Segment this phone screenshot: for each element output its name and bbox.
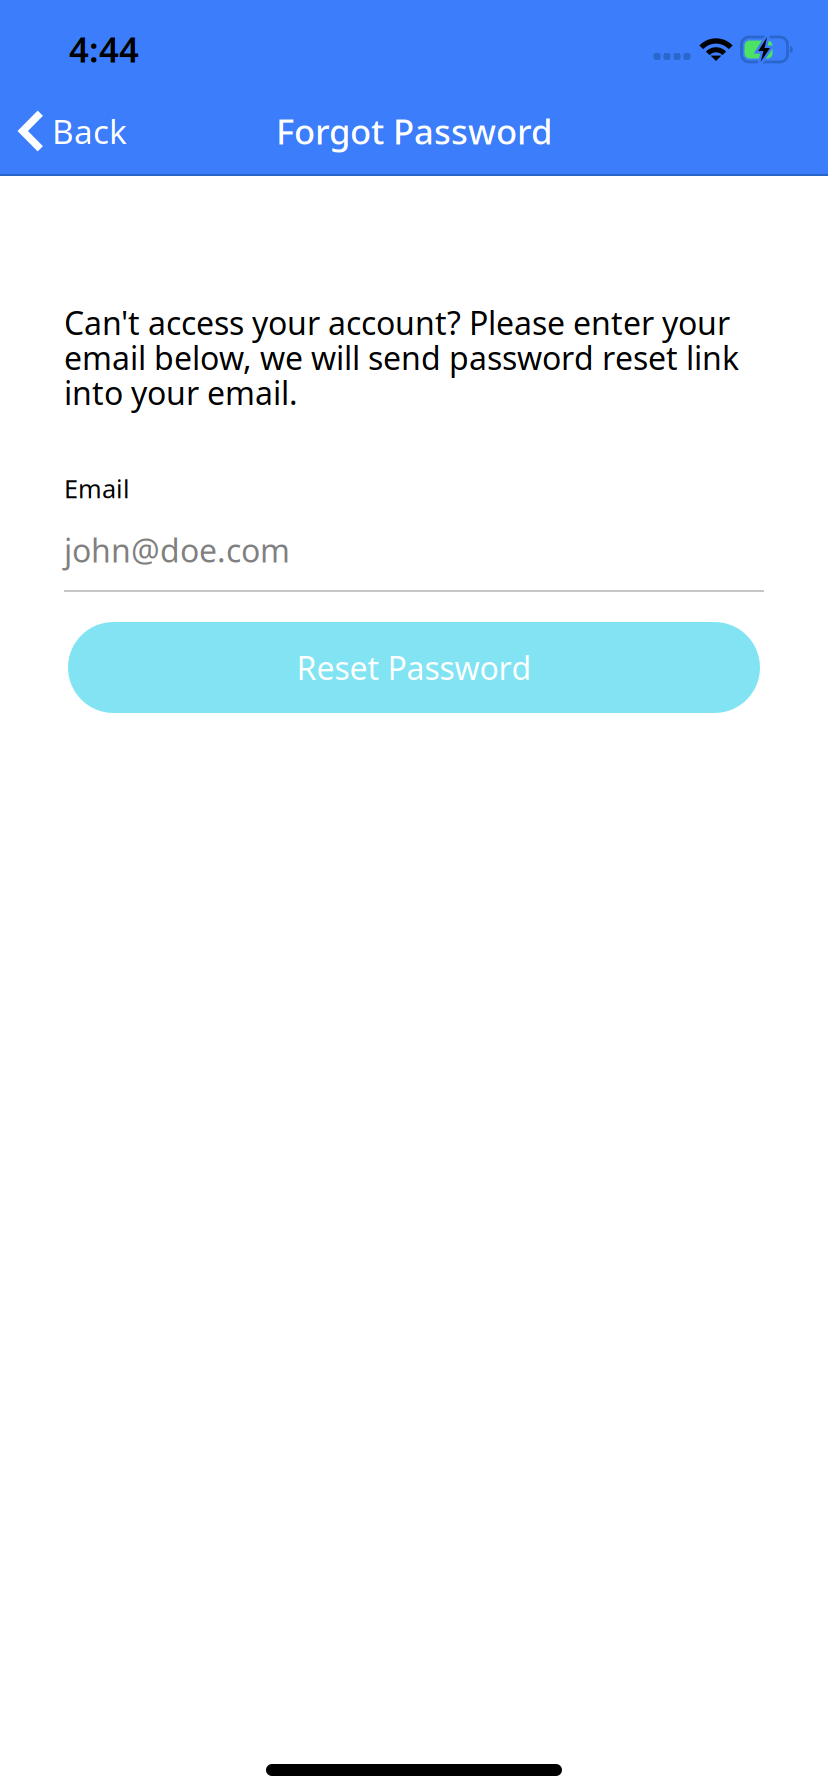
staticText: into your email. — [64, 371, 298, 414]
staticText: Reset Password — [296, 646, 531, 689]
staticText: Can't access your account? Please enter … — [64, 301, 730, 344]
staticText: email below, we will send password reset… — [64, 336, 739, 379]
staticText: john@doe.com — [64, 529, 290, 571]
button[interactable]: Back — [0, 88, 149, 174]
button[interactable]: Email address field — [64, 533, 764, 592]
button[interactable]: Reset Password — [68, 622, 760, 713]
staticText: Back — [52, 109, 127, 153]
staticText: Email — [64, 472, 130, 505]
staticText: Forgot Password — [276, 108, 552, 154]
staticText: 4:44 — [69, 26, 139, 72]
